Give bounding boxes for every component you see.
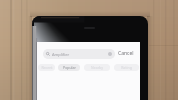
button[interactable]: Recent (38, 64, 55, 71)
staticText: Amplifier (52, 52, 70, 57)
staticText: Cancel (118, 50, 134, 57)
button[interactable]: Rating (114, 64, 139, 71)
staticText: Rating (121, 65, 132, 70)
staticText: Recent (41, 65, 53, 70)
button[interactable]: Cancel (117, 48, 135, 59)
button[interactable]: Clear search (108, 52, 112, 56)
staticText: Popular (63, 65, 76, 70)
button[interactable]: Nearby (84, 64, 110, 71)
staticText: Nearby (91, 65, 103, 70)
button[interactable]: Amplifier (43, 49, 115, 59)
button[interactable]: Popular (58, 64, 80, 71)
